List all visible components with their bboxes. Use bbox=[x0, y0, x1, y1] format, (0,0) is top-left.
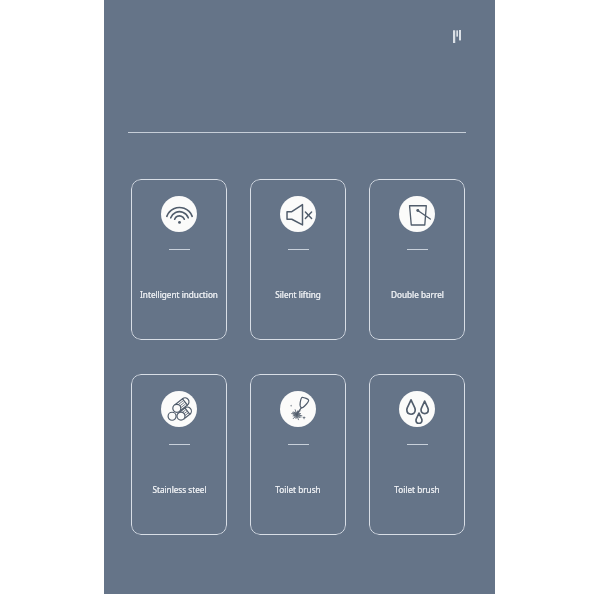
button[interactable]: Signal strength bbox=[453, 30, 461, 43]
button[interactable]: Silent lifting bbox=[250, 179, 346, 340]
staticText: Intelligent induction bbox=[140, 289, 218, 300]
button[interactable]: Double barrel bbox=[369, 179, 465, 340]
staticText: Toilet brush bbox=[394, 484, 440, 495]
button[interactable]: Stainless steel bbox=[131, 374, 227, 535]
staticText: Double barrel bbox=[391, 289, 444, 300]
staticText: Toilet brush bbox=[275, 484, 321, 495]
button[interactable]: Toilet brush bbox=[250, 374, 346, 535]
staticText: Stainless steel bbox=[152, 484, 207, 495]
staticText: Silent lifting bbox=[275, 289, 321, 300]
button[interactable]: Toilet brush bbox=[369, 374, 465, 535]
button[interactable]: Intelligent induction bbox=[131, 179, 227, 340]
